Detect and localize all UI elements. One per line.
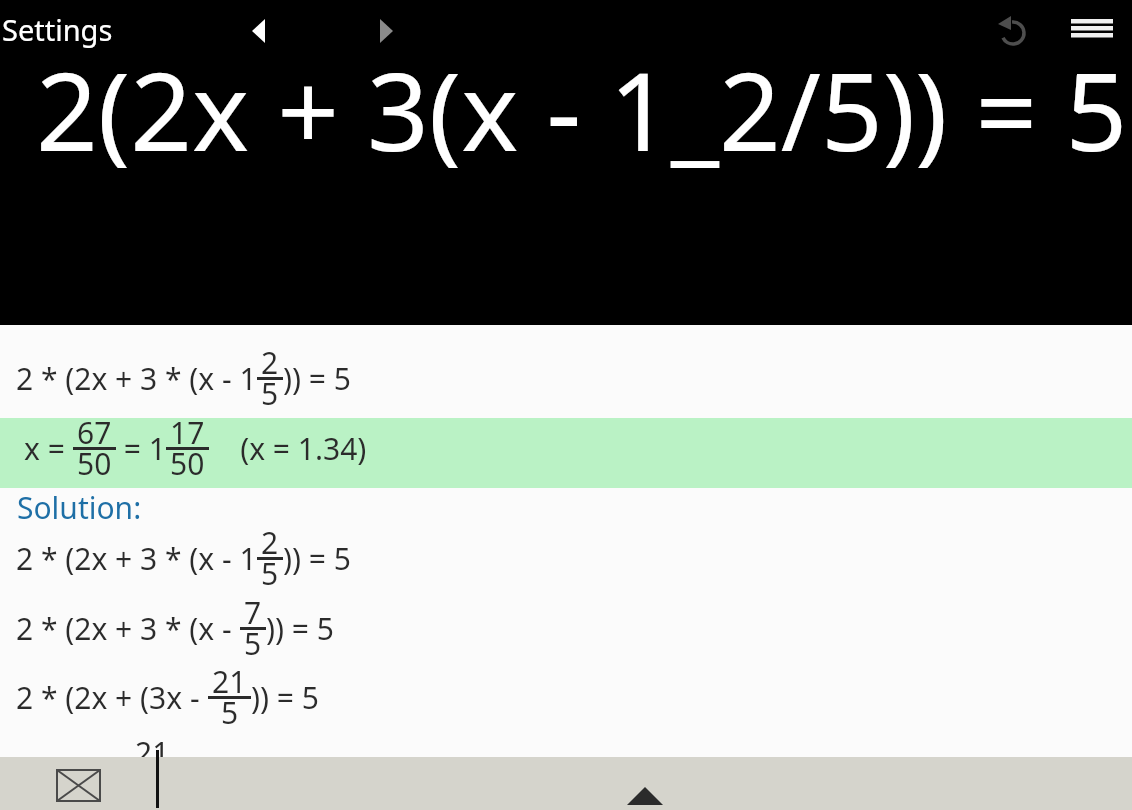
staticText: 21 (212, 661, 247, 702)
staticText: (x = 1.34) (209, 428, 367, 469)
staticText: 5 (221, 692, 239, 733)
staticText: x = (24, 428, 73, 469)
staticText: )) = 5 (266, 608, 334, 649)
staticText: 2 * (2x + 3 * (x - 1 (16, 538, 257, 579)
button[interactable]: Settings (2, 10, 113, 49)
button[interactable] (47, 761, 107, 806)
staticText: 50 (77, 443, 112, 484)
button[interactable] (993, 10, 1035, 52)
button[interactable] (240, 10, 280, 50)
button[interactable] (1066, 12, 1118, 46)
staticText: 7 (244, 592, 262, 633)
staticText: 5 (261, 373, 279, 414)
staticText: 2 (261, 522, 279, 563)
staticText: 2 * (2x + 3 * (x - 1 (16, 358, 257, 399)
staticText: 21 (135, 732, 170, 773)
staticText: Settings (2, 10, 113, 49)
staticText: 5 (261, 553, 279, 594)
staticText: 2 * (2x + (3x - (16, 677, 208, 718)
staticText: )) = 5 (283, 358, 351, 399)
staticText: 67 (77, 412, 112, 453)
staticText: 5 (244, 623, 262, 664)
staticText: )) = 5 (251, 677, 319, 718)
staticText: 2 (261, 342, 279, 383)
staticText: = 1 (116, 428, 166, 469)
button[interactable] (615, 770, 675, 810)
button[interactable] (368, 10, 408, 50)
staticText: 50 (170, 443, 205, 484)
staticText: 2(2x + 3(x - 1_2/5)) = 5 (36, 36, 1128, 183)
staticText: )) = 5 (283, 538, 351, 579)
staticText: 17 (170, 412, 205, 453)
staticText: Solution: (17, 487, 142, 528)
staticText: 2 * (2x + 3 * (x - (16, 608, 240, 649)
